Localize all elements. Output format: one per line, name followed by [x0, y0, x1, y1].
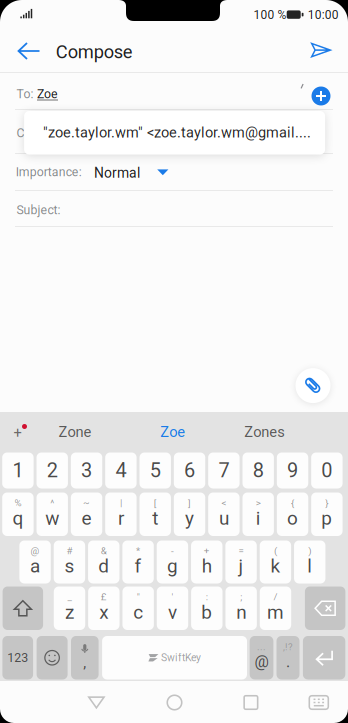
button[interactable]: _ — [54, 586, 85, 630]
button[interactable]: £ — [88, 586, 119, 630]
button[interactable]: } — [311, 492, 343, 536]
button[interactable]: ) — [294, 540, 325, 583]
button[interactable]: < — [208, 492, 240, 536]
staticText: 100 % — [253, 8, 286, 22]
staticText: + — [13, 424, 21, 442]
button[interactable]: ,!? — [276, 636, 299, 679]
button[interactable]: Back — [74, 685, 118, 719]
button[interactable]: @ — [19, 540, 51, 583]
button[interactable]: 8 — [242, 452, 274, 488]
staticText: Compose — [56, 41, 133, 63]
button[interactable]: * — [122, 540, 154, 583]
button[interactable]: Add clip — [3, 415, 37, 449]
staticText: a — [30, 555, 40, 577]
staticText: s — [64, 555, 74, 577]
button[interactable]: & — [88, 540, 119, 583]
button[interactable]: [ — [139, 492, 171, 536]
button[interactable]: 0 — [311, 452, 343, 488]
staticText: = — [239, 545, 244, 557]
staticText: Zones — [244, 423, 285, 441]
staticText: Zoe — [160, 423, 185, 441]
staticText: f — [135, 555, 142, 577]
button[interactable]: - — [157, 540, 188, 583]
button[interactable]: { — [277, 492, 308, 536]
staticText: m — [267, 601, 284, 623]
staticText: # — [66, 545, 72, 557]
button[interactable]: Send — [300, 29, 342, 71]
staticText: ^ — [50, 497, 54, 509]
staticText: ] — [188, 497, 191, 509]
button[interactable]: ; — [225, 586, 257, 630]
staticText: Normal — [94, 165, 140, 181]
button[interactable]: Zoe — [133, 415, 213, 449]
staticText: , — [83, 654, 86, 672]
staticText: "zoe.taylor.wm" <zoe.taylor.wm@gmail.... — [43, 124, 311, 141]
button[interactable]: Voice input — [71, 636, 99, 679]
button[interactable]: Hide keyboard — [297, 685, 341, 719]
button[interactable]: Backspace — [305, 586, 345, 630]
staticText: Cc: — [16, 126, 33, 140]
button[interactable]: + — [191, 540, 222, 583]
button[interactable]: ~ — [71, 492, 102, 536]
button[interactable]: 1 — [2, 452, 34, 488]
button[interactable]: Zone — [35, 415, 115, 449]
staticText: p — [321, 507, 332, 529]
button[interactable]: Enter — [303, 636, 345, 679]
staticText: : — [206, 591, 208, 603]
button[interactable]: Recents — [229, 685, 273, 719]
button[interactable]: # — [54, 540, 85, 583]
button[interactable]: / — [260, 586, 291, 630]
button[interactable]: Normal — [94, 163, 176, 183]
staticText: - — [171, 545, 174, 557]
button[interactable]: Home — [152, 685, 196, 719]
button[interactable]: : — [191, 586, 222, 630]
staticText: Zone — [58, 423, 91, 441]
button[interactable]: 9 — [277, 452, 308, 488]
staticText: c — [133, 601, 143, 623]
staticText: @ — [255, 652, 269, 671]
staticText: & — [101, 545, 107, 557]
button[interactable]: Space — [102, 636, 247, 679]
staticText: 8 — [253, 459, 264, 482]
button[interactable]: Zones — [225, 415, 305, 449]
button[interactable]: Shift — [3, 586, 43, 630]
button[interactable]: ' — [157, 586, 188, 630]
staticText: t — [152, 507, 158, 529]
button[interactable]: > — [242, 492, 274, 536]
button[interactable]: = — [225, 540, 257, 583]
button[interactable]: ] — [174, 492, 205, 536]
staticText: q — [12, 507, 23, 529]
button[interactable]: 4 — [105, 452, 137, 488]
staticText: * — [136, 545, 140, 557]
staticText: n — [236, 601, 246, 623]
button[interactable]: Add recipient — [304, 79, 338, 113]
staticText: ... — [257, 641, 266, 653]
button[interactable]: ^ — [36, 492, 68, 536]
staticText: ( — [274, 545, 277, 557]
staticText: | — [120, 497, 122, 509]
button[interactable]: " — [122, 586, 154, 630]
button[interactable]: ... — [250, 636, 273, 679]
staticText: [ — [154, 497, 157, 509]
button[interactable]: Emoji — [37, 636, 68, 679]
staticText: r — [118, 507, 124, 529]
staticText: Zoe — [37, 87, 58, 101]
staticText: y — [185, 507, 194, 529]
staticText: { — [291, 497, 294, 509]
button[interactable]: 3 — [71, 452, 102, 488]
button[interactable]: Attach file — [291, 364, 335, 408]
staticText: ,!? — [283, 641, 293, 653]
button[interactable]: 2 — [36, 452, 68, 488]
staticText: 9 — [287, 459, 298, 482]
button[interactable]: "zoe.taylor.wm" <zoe.taylor.wm@gmail.... — [24, 111, 325, 154]
button[interactable]: 123 — [2, 636, 33, 679]
button[interactable]: 7 — [208, 452, 240, 488]
button[interactable]: ( — [260, 540, 291, 583]
staticText: o — [287, 507, 298, 529]
button[interactable]: Back — [8, 30, 50, 72]
button[interactable]: 6 — [174, 452, 205, 488]
staticText: £ — [101, 591, 107, 603]
button[interactable]: 5 — [139, 452, 171, 488]
button[interactable]: % — [2, 492, 34, 536]
button[interactable]: | — [105, 492, 137, 536]
